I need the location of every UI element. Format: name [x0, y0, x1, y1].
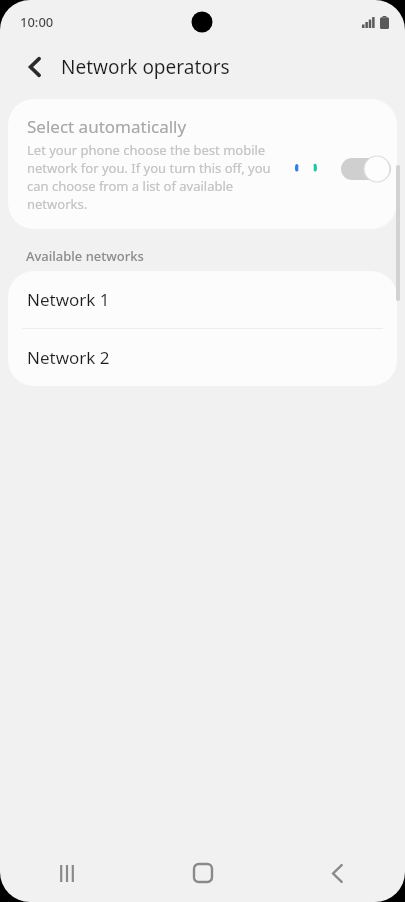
staticText: Let your phone choose the best mobile ne…	[27, 141, 282, 213]
button[interactable]: Network 1	[8, 271, 397, 328]
button[interactable]: Select automatically toggle	[341, 155, 391, 183]
button[interactable]: Select automatically	[8, 99, 397, 229]
staticText: 10:00	[20, 13, 54, 31]
button[interactable]: Home	[135, 844, 270, 902]
button[interactable]: Back	[14, 46, 56, 88]
staticText: Select automatically	[27, 115, 187, 138]
staticText: Network 2	[27, 346, 110, 369]
button[interactable]: Back	[270, 844, 405, 902]
staticText: Network 1	[27, 288, 110, 311]
staticText: Available networks	[26, 247, 144, 265]
staticText: Network operators	[61, 54, 230, 80]
button[interactable]: Network 2	[8, 329, 397, 386]
button[interactable]: Recent apps	[0, 844, 135, 902]
